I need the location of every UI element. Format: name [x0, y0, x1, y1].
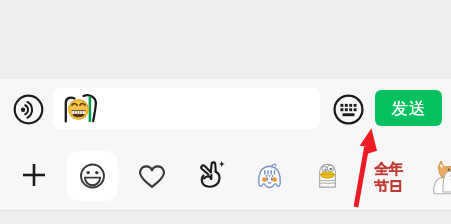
- button[interactable]: Sticker pack 1: [257, 163, 282, 188]
- button[interactable]: Gesture stickers: [196, 158, 226, 188]
- button[interactable]: Favorites: [139, 164, 165, 188]
- staticText: 节日: [374, 178, 403, 192]
- button[interactable]: Emoji: [67, 151, 118, 201]
- button[interactable]: Sticker pack 3: [427, 158, 451, 192]
- button[interactable]: Sticker pack 2: [319, 161, 336, 188]
- button[interactable]: Voice input: [13, 94, 44, 125]
- button[interactable]: [53, 88, 320, 129]
- staticText: 全年: [374, 160, 403, 178]
- button[interactable]: Keyboard: [333, 94, 364, 125]
- button[interactable]: 全年: [371, 160, 405, 192]
- button[interactable]: 发送: [375, 90, 442, 126]
- button[interactable]: Add sticker: [20, 161, 48, 189]
- staticText: 发送: [391, 98, 426, 119]
